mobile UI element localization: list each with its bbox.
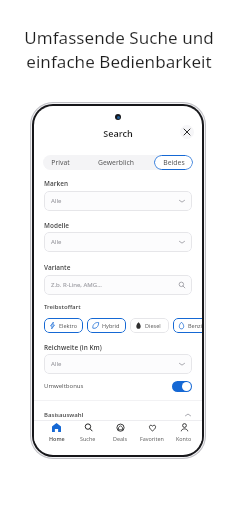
staticText: Variante: [44, 263, 71, 272]
staticText: Alle: [51, 238, 178, 246]
staticText: Treibstoffart: [44, 303, 81, 311]
button[interactable]: Umweltbonus: [44, 380, 192, 392]
button[interactable]: Gewerblich: [78, 155, 154, 170]
staticText: Marken: [44, 179, 69, 188]
button[interactable]: Favoriten: [136, 421, 168, 443]
staticText: Umweltbonus: [44, 382, 172, 390]
staticText: Alle: [51, 197, 178, 205]
staticText: Search: [103, 127, 133, 139]
staticText: Deals: [113, 435, 127, 442]
staticText: Elektro: [59, 322, 77, 329]
button[interactable]: Close: [180, 125, 194, 139]
staticText: Umfassende Suche und: [24, 26, 214, 49]
button[interactable]: Hybrid: [87, 318, 126, 333]
staticText: Alle: [51, 360, 178, 368]
staticText: einfache Bedienbarkeit: [26, 50, 212, 73]
button[interactable]: Privat: [43, 155, 78, 170]
staticText: Hybrid: [102, 322, 120, 329]
button[interactable]: Home: [41, 421, 72, 443]
staticText: Z.b. R-Line, AMG...: [51, 281, 178, 289]
staticText: Basisauswahl: [44, 411, 184, 419]
button[interactable]: Beides: [154, 155, 193, 170]
button[interactable]: Suche: [72, 421, 104, 443]
staticText: Reichweite (in Km): [44, 343, 102, 352]
button[interactable]: Z.b. R-Line, AMG...: [44, 275, 192, 295]
button[interactable]: Alle: [44, 354, 192, 374]
staticText: Favoriten: [140, 435, 164, 442]
button[interactable]: Alle: [44, 191, 192, 211]
staticText: Konto: [176, 435, 192, 442]
staticText: Diesel: [145, 322, 161, 329]
button[interactable]: Basisauswahl: [44, 410, 192, 420]
staticText: Gewerblich: [98, 158, 134, 167]
button[interactable]: Deals: [104, 421, 136, 443]
staticText: Privat: [51, 158, 70, 167]
staticText: Beides: [163, 158, 185, 167]
staticText: Modelle: [44, 221, 69, 230]
staticText: Benzin: [188, 322, 202, 329]
button[interactable]: Elektro: [44, 318, 83, 333]
button[interactable]: Benzin: [173, 318, 202, 333]
button[interactable]: Alle: [44, 232, 192, 252]
button[interactable]: Diesel: [130, 318, 169, 333]
button[interactable]: Konto: [168, 421, 200, 443]
staticText: Home: [49, 435, 65, 442]
staticText: Suche: [80, 435, 96, 442]
